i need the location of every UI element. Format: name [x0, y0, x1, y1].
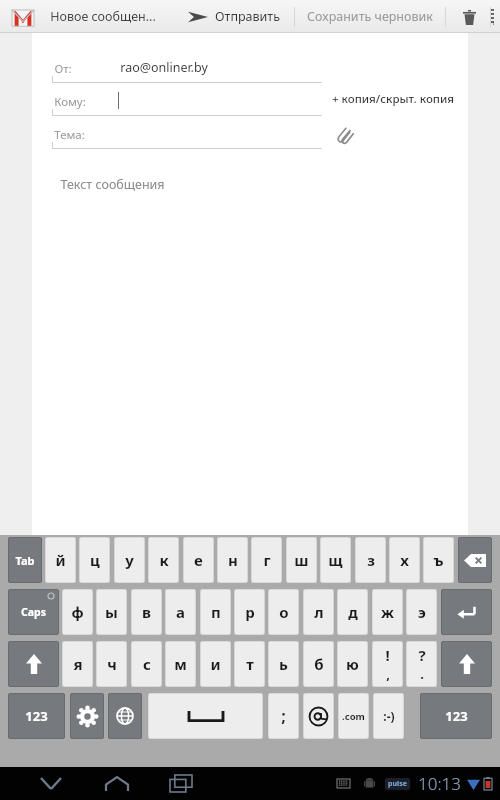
button[interactable]: Delete: [458, 6, 480, 28]
staticText: я: [73, 654, 83, 674]
button[interactable]: 123: [420, 693, 492, 739]
button[interactable]: а: [165, 589, 196, 635]
button[interactable]: у: [114, 537, 145, 583]
button[interactable]: Recent apps: [164, 767, 198, 800]
staticText: 123: [25, 707, 48, 725]
button[interactable]: + копия/скрыт. копия: [328, 87, 458, 111]
button[interactable]: ж: [372, 589, 403, 635]
staticText: р: [245, 602, 255, 622]
staticText: б: [314, 654, 324, 674]
staticText: Tab: [15, 553, 35, 568]
staticText: Caps: [21, 605, 46, 619]
button[interactable]: я: [62, 641, 93, 687]
staticText: у: [125, 550, 134, 570]
button[interactable]: Attach file: [332, 121, 360, 149]
staticText: Новое сообщен...: [50, 8, 156, 25]
button[interactable]: at: [303, 693, 334, 739]
button[interactable]: п: [200, 589, 231, 635]
button[interactable]: ф: [62, 589, 93, 635]
button[interactable]: о: [268, 589, 299, 635]
button[interactable]: и: [200, 641, 231, 687]
button[interactable]: р: [234, 589, 265, 635]
staticText: н: [228, 550, 238, 570]
button[interactable]: т: [234, 641, 265, 687]
staticText: + копия/скрыт. копия: [332, 91, 454, 107]
staticText: т: [246, 654, 254, 674]
staticText: Текст сообщения: [60, 176, 165, 193]
button[interactable]: э: [406, 589, 437, 635]
button[interactable]: щ: [320, 537, 351, 583]
button[interactable]: shift: [441, 641, 492, 687]
button[interactable]: б: [303, 641, 334, 687]
button[interactable]: ы: [96, 589, 127, 635]
button[interactable]: ю: [337, 641, 368, 687]
staticText: 123: [445, 707, 468, 725]
button[interactable]: й: [45, 537, 76, 583]
button[interactable]: е: [183, 537, 214, 583]
staticText: э: [418, 602, 426, 622]
button[interactable]: !: [372, 641, 403, 687]
staticText: ы: [105, 602, 118, 622]
button[interactable]: backspace: [458, 537, 492, 583]
button[interactable]: .com: [338, 693, 369, 739]
button[interactable]: с: [131, 641, 162, 687]
staticText: От:: [54, 61, 72, 77]
button[interactable]: ъ: [423, 537, 454, 583]
button[interactable]: Home: [100, 767, 134, 800]
button[interactable]: м: [165, 641, 196, 687]
staticText: п: [211, 602, 221, 622]
staticText: щ: [328, 550, 343, 570]
staticText: ц: [90, 550, 100, 570]
staticText: Тема:: [54, 127, 85, 143]
staticText: Отправить: [215, 8, 280, 25]
button[interactable]: space: [148, 693, 263, 739]
staticText: г: [263, 550, 271, 570]
button[interactable]: 123: [8, 693, 65, 739]
staticText: ;: [281, 705, 286, 727]
button[interactable]: shift: [8, 641, 59, 687]
staticText: ,: [386, 665, 390, 683]
button[interactable]: От:: [52, 55, 322, 83]
button[interactable]: Тема:: [52, 121, 322, 149]
button[interactable]: ц: [79, 537, 110, 583]
button[interactable]: Сохранить черновик: [307, 8, 433, 25]
button[interactable]: Кому:: [52, 88, 322, 116]
staticText: х: [400, 550, 409, 570]
staticText: rao@onliner.by: [120, 59, 208, 76]
button[interactable]: ч: [96, 641, 127, 687]
button[interactable]: Gmail: [8, 2, 38, 32]
button[interactable]: в: [131, 589, 162, 635]
button[interactable]: gear: [70, 693, 104, 739]
staticText: pulse: [388, 779, 407, 789]
staticText: в: [142, 602, 151, 622]
button[interactable]: х: [389, 537, 420, 583]
button[interactable]: ?: [406, 641, 437, 687]
button[interactable]: г: [251, 537, 282, 583]
staticText: й: [55, 550, 66, 570]
staticText: ф: [71, 602, 84, 622]
button[interactable]: ь: [268, 641, 299, 687]
button[interactable]: н: [217, 537, 248, 583]
button[interactable]: caps: [8, 589, 59, 635]
button[interactable]: More options: [491, 4, 494, 30]
button[interactable]: л: [303, 589, 334, 635]
button[interactable]: Back: [34, 767, 68, 800]
staticText: ь: [279, 654, 288, 674]
staticText: м: [174, 654, 187, 674]
button[interactable]: з: [355, 537, 386, 583]
button[interactable]: globe: [108, 693, 142, 739]
staticText: ю: [346, 654, 359, 674]
button[interactable]: к: [148, 537, 179, 583]
button[interactable]: д: [337, 589, 368, 635]
button[interactable]: ;: [268, 693, 299, 739]
button[interactable]: enter: [441, 589, 492, 635]
button[interactable]: :-): [373, 693, 404, 739]
staticText: д: [348, 602, 358, 622]
button[interactable]: ш: [286, 537, 317, 583]
staticText: ш: [294, 550, 309, 570]
staticText: ?: [418, 645, 426, 665]
button[interactable]: Tab: [8, 537, 42, 583]
button[interactable]: Отправить: [184, 5, 284, 28]
staticText: :-): [383, 708, 395, 724]
staticText: е: [194, 550, 203, 570]
